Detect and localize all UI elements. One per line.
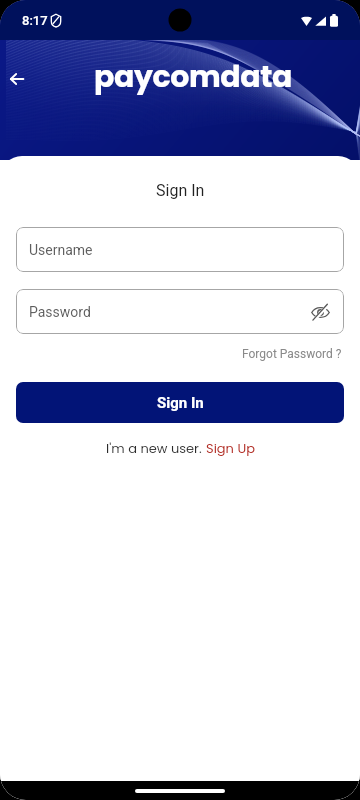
button[interactable]: Forgot Password ? xyxy=(240,344,344,364)
staticText: I'm a new user. xyxy=(106,439,206,457)
staticText: Forgot Password ? xyxy=(242,347,342,361)
staticText: Sign Up xyxy=(206,439,255,457)
button[interactable]: Back xyxy=(1,63,33,95)
staticText: Sign In xyxy=(156,181,205,200)
staticText: paycomdata xyxy=(94,56,293,98)
button[interactable]: Sign In xyxy=(16,382,344,423)
staticText: Password xyxy=(29,304,91,320)
button[interactable]: Username xyxy=(16,227,344,272)
staticText: Sign In xyxy=(157,394,204,412)
button[interactable]: Sign Up xyxy=(206,439,255,457)
staticText: Username xyxy=(29,242,93,258)
staticText: 8:17 xyxy=(22,13,48,28)
button[interactable]: Password xyxy=(16,289,344,334)
button[interactable]: Show password xyxy=(306,298,334,326)
